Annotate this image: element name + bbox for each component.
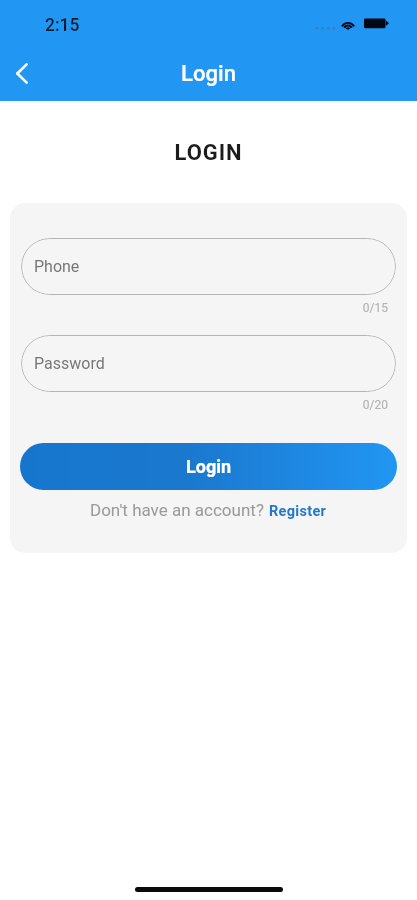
button[interactable]: Password [21,335,396,392]
button[interactable]: Login [20,443,397,490]
staticText: Phone [34,257,80,276]
staticText: 0/20 [10,398,388,412]
staticText: Password [34,354,105,373]
button[interactable]: Phone [21,238,396,295]
staticText: Don't have an account? [90,500,269,520]
staticText: 0/15 [10,301,388,315]
staticText: LOGIN [0,140,417,166]
button[interactable]: Back [0,50,44,97]
staticText: Login [186,456,232,477]
staticText: 2:15 [45,15,80,36]
button[interactable]: Register [269,503,327,520]
staticText: Login [0,61,417,87]
